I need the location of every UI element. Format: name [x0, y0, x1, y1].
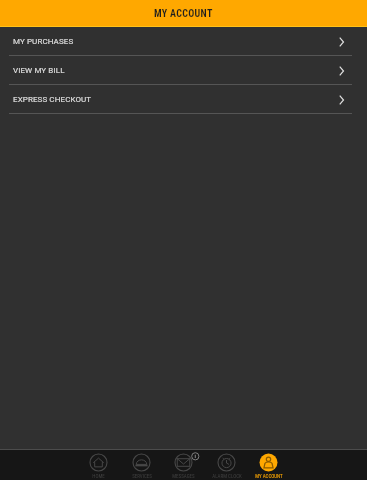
staticText: MY PURCHASES [13, 37, 74, 46]
staticText: MESSAGES [172, 473, 195, 479]
button[interactable]: MESSAGES [162, 450, 205, 480]
staticText: MY ACCOUNT [255, 473, 283, 479]
button[interactable]: EXPRESS CHECKOUT [0, 85, 367, 114]
staticText: SERVICES [132, 473, 152, 479]
staticText: EXPRESS CHECKOUT [13, 95, 92, 104]
staticText: VIEW MY BILL [13, 66, 65, 75]
button[interactable]: SERVICES [120, 450, 163, 480]
button[interactable]: MY PURCHASES [0, 27, 367, 56]
staticText: HOME [92, 473, 105, 479]
button[interactable]: VIEW MY BILL [0, 56, 367, 85]
staticText: MY ACCOUNT [154, 8, 213, 20]
staticText: ALARM CLOCK [212, 473, 242, 479]
button[interactable]: ALARM CLOCK [205, 450, 248, 480]
button[interactable]: MY ACCOUNT [247, 450, 290, 480]
button[interactable]: HOME [77, 450, 120, 480]
